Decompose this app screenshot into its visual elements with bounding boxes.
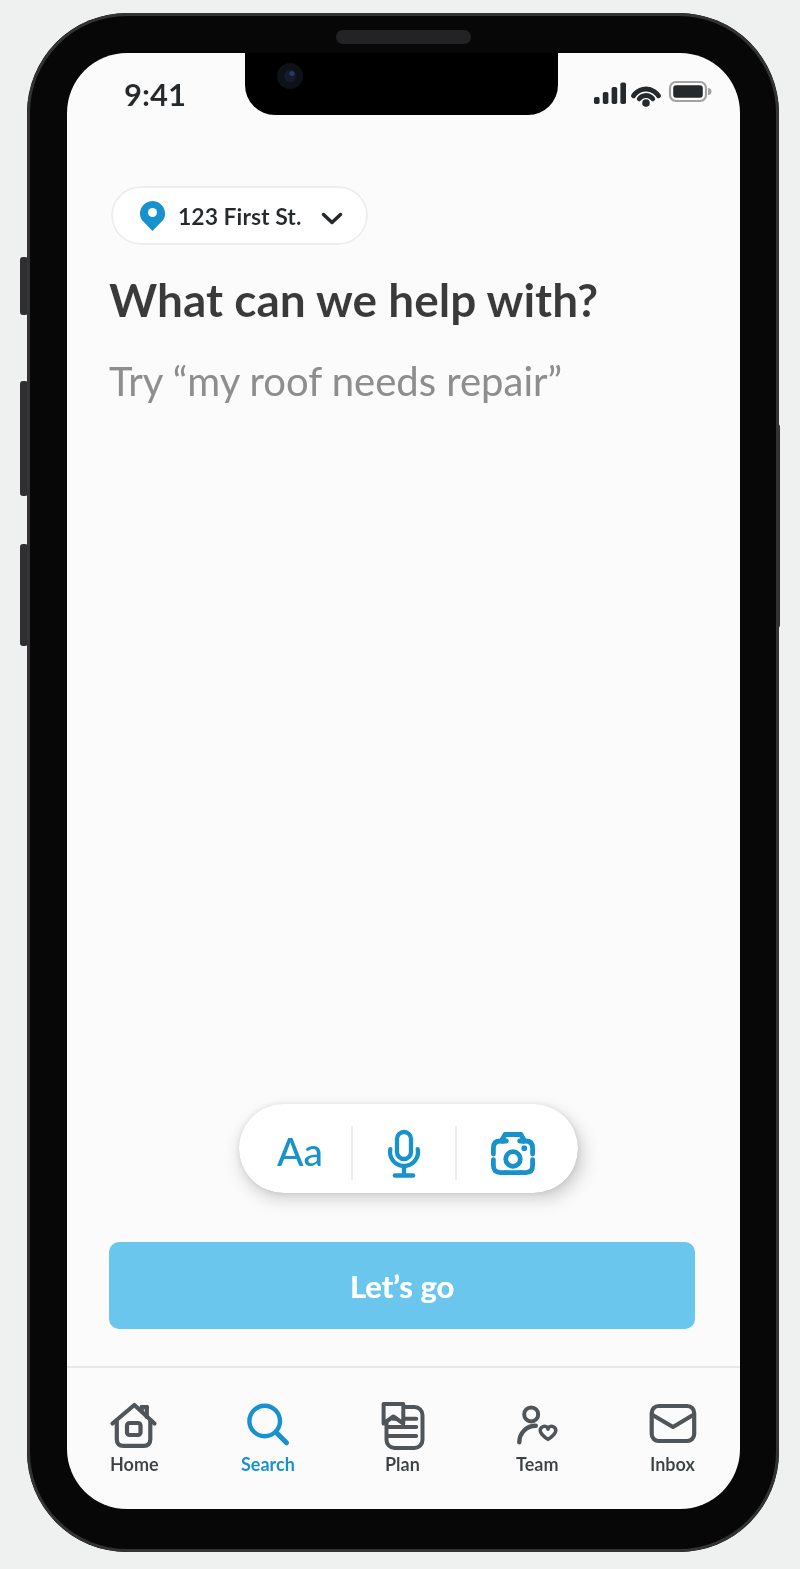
button[interactable] xyxy=(457,1104,571,1193)
button[interactable]: Let’s go xyxy=(109,1242,695,1329)
button[interactable]: 123 First St. xyxy=(111,186,368,245)
staticText: What can we help with? xyxy=(109,272,599,327)
staticText: 123 First St. xyxy=(178,202,302,230)
staticText: 9:41 xyxy=(124,75,186,112)
staticText: Home xyxy=(110,1453,159,1475)
staticText: Team xyxy=(516,1453,559,1475)
staticText: Inbox xyxy=(650,1453,695,1475)
button[interactable]: Aa xyxy=(239,1104,351,1193)
staticText: Aa xyxy=(277,1128,324,1175)
button[interactable] xyxy=(353,1104,455,1193)
button[interactable]: Team xyxy=(470,1368,605,1509)
button[interactable]: Plan xyxy=(335,1368,470,1509)
staticText: Try “my roof needs repair” xyxy=(109,357,563,405)
staticText: Search xyxy=(241,1453,295,1475)
button[interactable]: Search xyxy=(201,1368,335,1509)
staticText: Let’s go xyxy=(350,1267,455,1304)
button[interactable]: Home xyxy=(67,1368,201,1509)
staticText: Plan xyxy=(385,1453,420,1475)
button[interactable]: Inbox xyxy=(605,1368,740,1509)
